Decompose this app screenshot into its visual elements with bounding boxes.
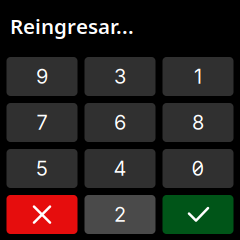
button[interactable]: Cancelar	[6, 195, 77, 234]
staticText: 5	[36, 156, 48, 181]
staticText: 1	[194, 64, 202, 89]
staticText: 9	[36, 64, 48, 89]
button[interactable]: 4	[84, 149, 155, 188]
staticText: 4	[113, 156, 126, 181]
staticText: Reingresar...	[10, 12, 134, 40]
button[interactable]: 8	[162, 103, 233, 142]
staticText: 8	[192, 110, 204, 135]
button[interactable]: 2	[84, 195, 155, 234]
staticText: 0	[191, 156, 204, 181]
button[interactable]: Aceptar	[162, 195, 233, 234]
button[interactable]: 0	[162, 149, 233, 188]
button[interactable]: 9	[6, 57, 77, 96]
button[interactable]: 7	[6, 103, 77, 142]
staticText: 6	[114, 110, 126, 135]
staticText: 3	[114, 64, 126, 89]
button[interactable]: 1	[162, 57, 233, 96]
staticText: 2	[114, 202, 126, 227]
button[interactable]: 3	[84, 57, 155, 96]
button[interactable]: 5	[6, 149, 77, 188]
button[interactable]: 6	[84, 103, 155, 142]
staticText: 7	[36, 110, 47, 135]
